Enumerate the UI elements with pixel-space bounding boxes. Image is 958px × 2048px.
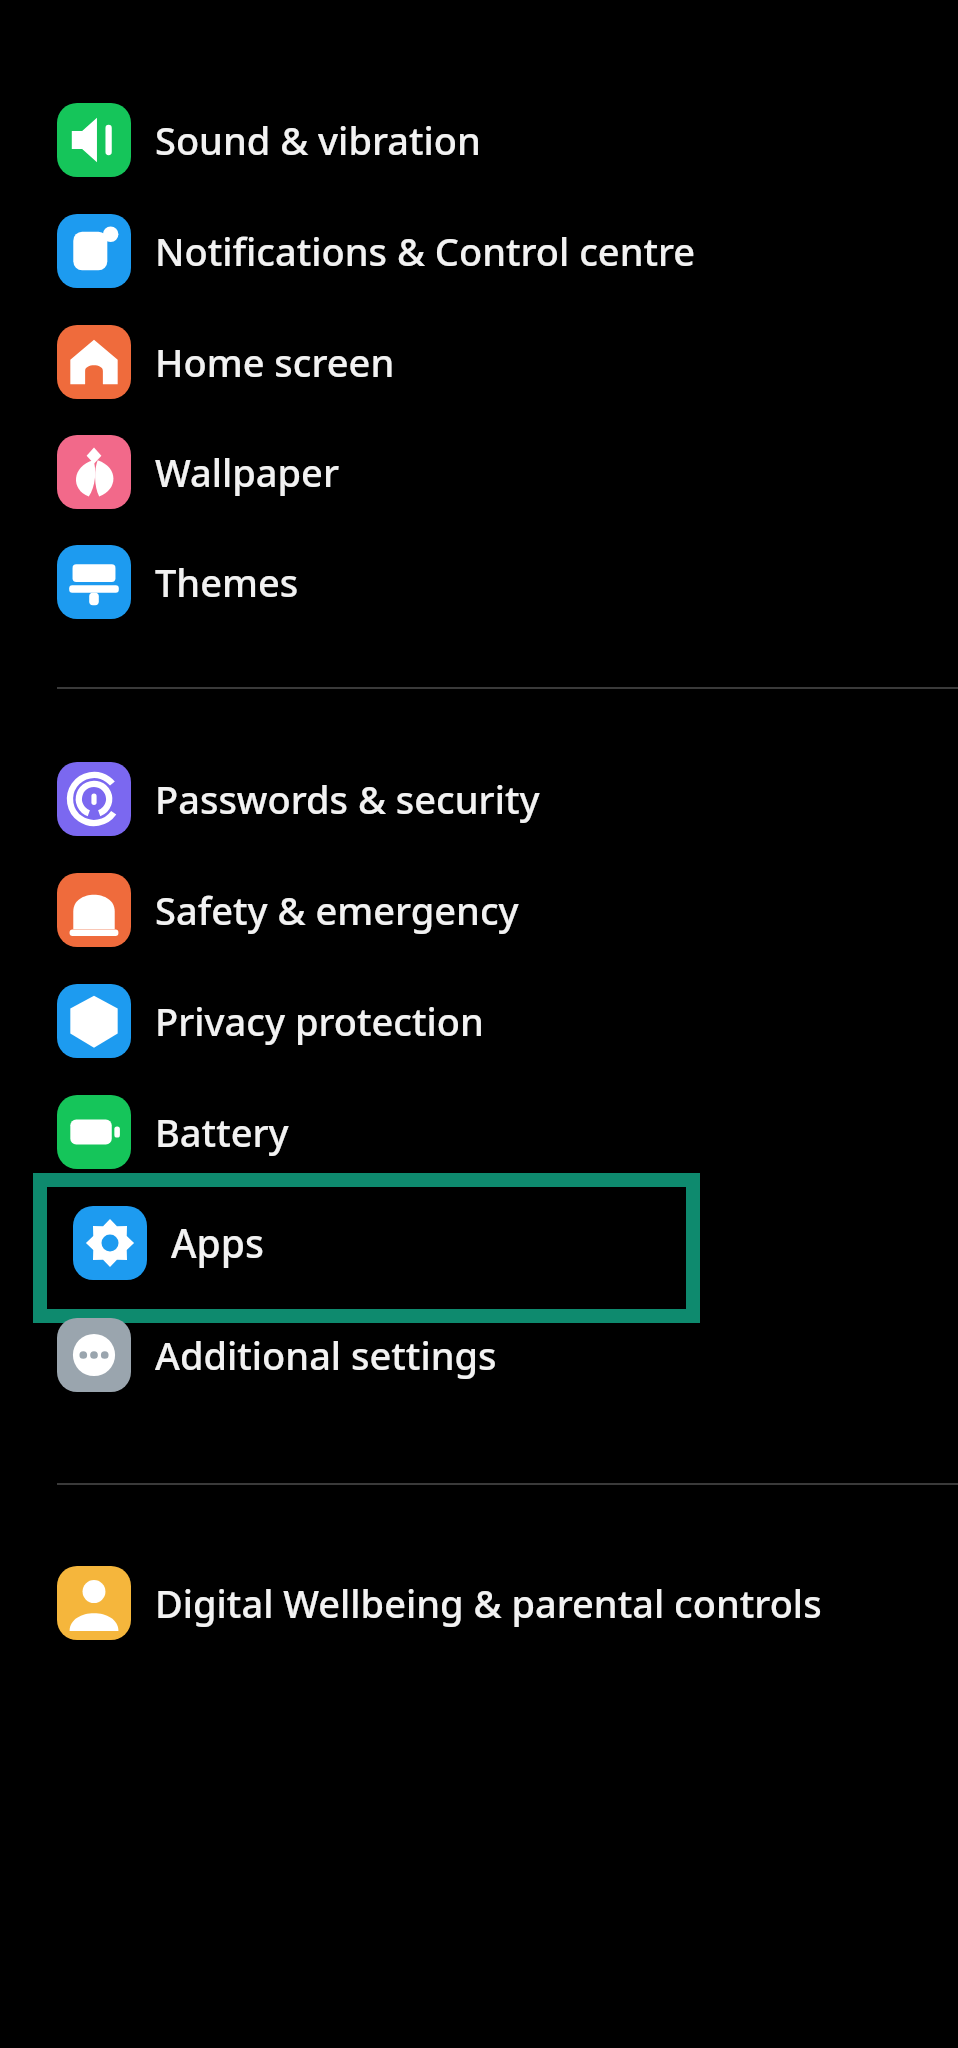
staticText: Sound & vibration bbox=[155, 114, 481, 166]
staticText: Notifications & Control centre bbox=[155, 225, 696, 277]
button[interactable]: Privacy protection bbox=[0, 965, 958, 1076]
staticText: Battery bbox=[155, 1106, 289, 1158]
button[interactable]: Passwords & security bbox=[0, 743, 958, 854]
staticText: Additional settings bbox=[155, 1329, 497, 1381]
button[interactable]: Home screen bbox=[0, 306, 958, 417]
button[interactable]: Digital Wellbeing & parental controls bbox=[0, 1547, 958, 1658]
staticText: Digital Wellbeing & parental controls bbox=[155, 1577, 822, 1629]
button[interactable]: Wallpaper bbox=[0, 417, 958, 527]
button[interactable]: Themes bbox=[0, 527, 958, 637]
staticText: Home screen bbox=[155, 336, 395, 388]
staticText: Passwords & security bbox=[155, 773, 540, 825]
button[interactable]: Safety & emergency bbox=[0, 854, 958, 965]
staticText: Themes bbox=[155, 556, 299, 608]
staticText: Privacy protection bbox=[155, 995, 484, 1047]
button[interactable]: Battery bbox=[0, 1076, 958, 1187]
button[interactable]: Sound & vibration bbox=[0, 85, 958, 195]
staticText: Apps bbox=[171, 1216, 264, 1269]
button[interactable]: Notifications & Control centre bbox=[0, 195, 958, 306]
button[interactable]: Additional settings bbox=[0, 1298, 958, 1411]
button[interactable]: Apps bbox=[0, 1187, 958, 1298]
staticText: Wallpaper bbox=[155, 446, 339, 498]
staticText: Safety & emergency bbox=[155, 884, 519, 936]
